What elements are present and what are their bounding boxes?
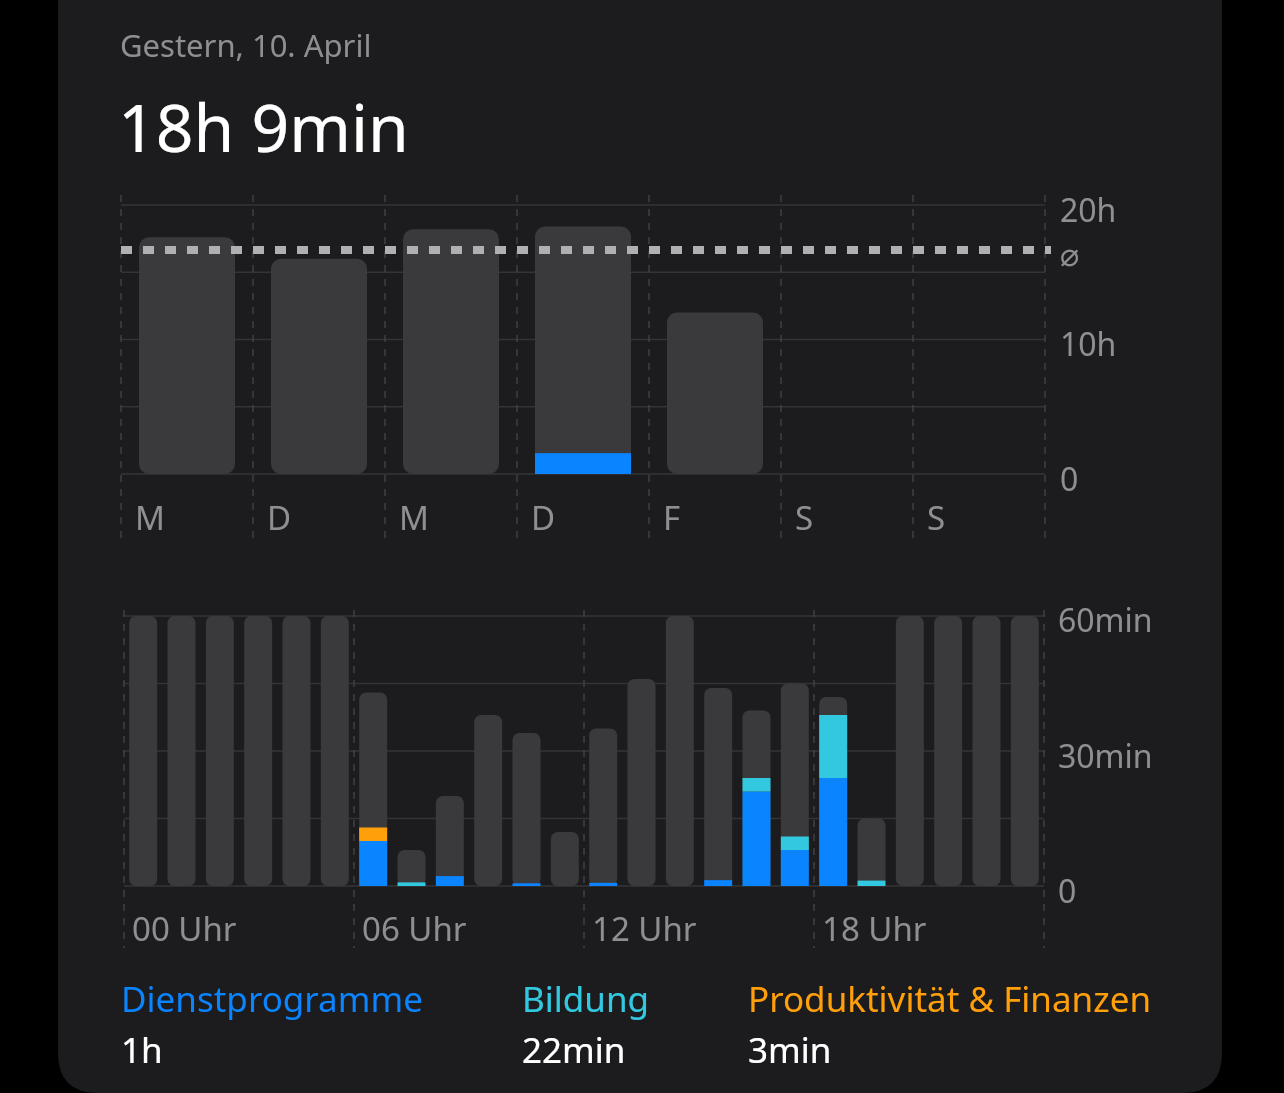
button[interactable]: Screen Time chart — [0, 0, 1284, 1093]
